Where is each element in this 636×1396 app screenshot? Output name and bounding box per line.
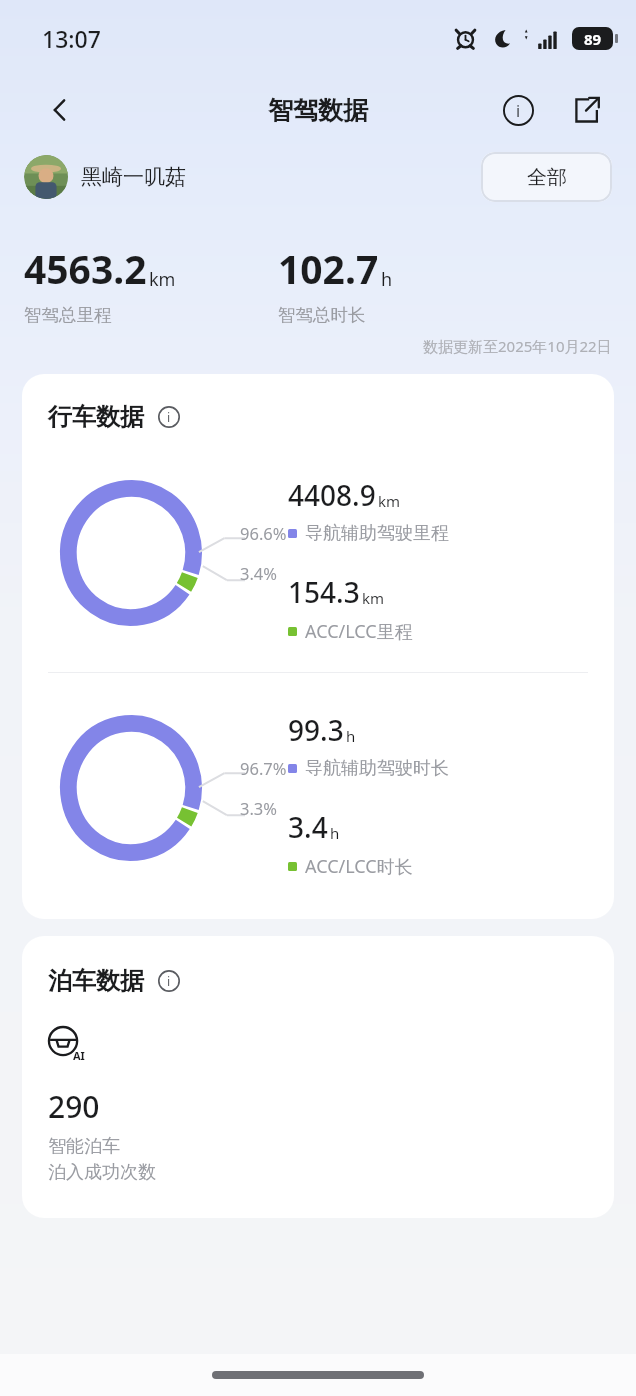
- staticText: 全部: [527, 165, 567, 190]
- staticText: 导航辅助驾驶时长: [305, 757, 449, 780]
- staticText: 3.4: [288, 808, 328, 846]
- staticText: 290: [48, 1086, 100, 1127]
- staticText: 智驾总里程: [24, 304, 112, 326]
- staticText: km: [149, 267, 176, 292]
- staticText: ACC/LCC时长: [305, 854, 413, 879]
- staticText: 99.3: [288, 711, 344, 749]
- staticText: 导航辅助驾驶里程: [305, 522, 449, 545]
- staticText: i: [167, 973, 171, 990]
- button[interactable]: Info: [494, 86, 542, 134]
- staticText: 黑崎一叽菇: [81, 164, 186, 190]
- button[interactable]: Info about 行车数据: [152, 400, 186, 434]
- staticText: i: [516, 100, 521, 122]
- staticText: 13:07: [42, 23, 101, 54]
- staticText: 4408.9: [288, 476, 376, 514]
- button[interactable]: 全部: [481, 152, 612, 202]
- staticText: 智能泊车: [48, 1135, 120, 1158]
- staticText: 智驾数据: [268, 95, 368, 126]
- staticText: AI: [73, 1048, 85, 1063]
- staticText: 154.3: [288, 573, 360, 611]
- button[interactable]: 黑崎一叽菇: [24, 155, 192, 199]
- staticText: 数据更新至2025年10月22日: [423, 336, 612, 356]
- button[interactable]: Share: [562, 86, 610, 134]
- staticText: 89: [584, 29, 602, 49]
- staticText: km: [378, 491, 401, 511]
- staticText: 3.4%: [240, 562, 278, 584]
- staticText: 3.3%: [240, 797, 278, 819]
- staticText: 泊入成功次数: [48, 1161, 156, 1184]
- staticText: h: [330, 823, 340, 843]
- staticText: 4563.2: [24, 242, 147, 295]
- staticText: i: [167, 409, 171, 426]
- staticText: 96.6%: [240, 522, 287, 544]
- staticText: ACC/LCC里程: [305, 619, 413, 644]
- staticText: h: [346, 726, 356, 746]
- staticText: h: [381, 267, 393, 292]
- staticText: 96.7%: [240, 757, 287, 779]
- staticText: 行车数据: [48, 402, 144, 432]
- staticText: 102.7: [278, 242, 379, 295]
- button[interactable]: Info about 泊车数据: [152, 964, 186, 998]
- staticText: km: [362, 588, 385, 608]
- staticText: 泊车数据: [48, 966, 144, 996]
- button[interactable]: Back: [34, 84, 86, 136]
- staticText: 智驾总时长: [278, 304, 366, 326]
